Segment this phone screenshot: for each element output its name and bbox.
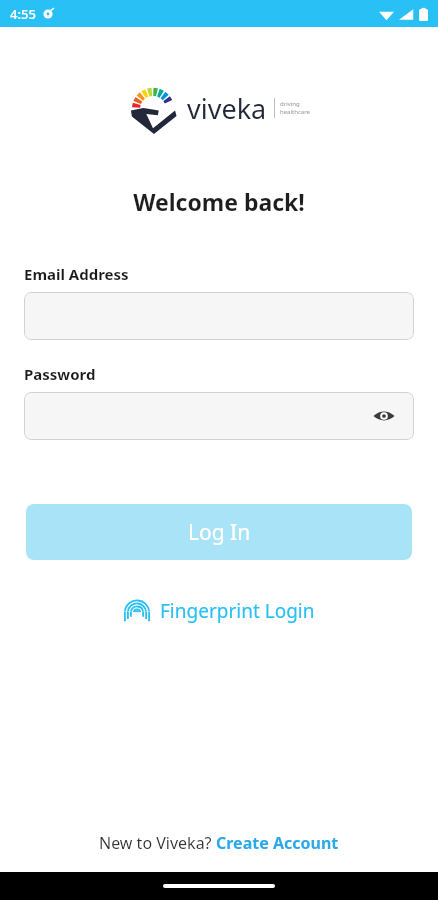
staticText: 4:55 bbox=[10, 5, 36, 23]
staticText: Create Account bbox=[216, 832, 339, 854]
staticText: Password bbox=[24, 364, 96, 384]
button[interactable]: Create Account bbox=[216, 832, 339, 854]
staticText: Email Address bbox=[24, 264, 129, 284]
staticText: Log In bbox=[188, 518, 251, 547]
staticText: Fingerprint Login bbox=[160, 598, 315, 624]
staticText: driving bbox=[280, 100, 300, 108]
staticText: Welcome back! bbox=[133, 186, 305, 217]
button[interactable] bbox=[24, 292, 414, 340]
staticText: viveka bbox=[187, 90, 267, 127]
button[interactable]: Fingerprint Login bbox=[116, 594, 323, 628]
staticText: healthcare bbox=[280, 108, 310, 116]
staticText: New to Viveka? bbox=[99, 832, 216, 854]
button[interactable]: Show password bbox=[24, 392, 414, 440]
button[interactable]: Show password bbox=[370, 402, 398, 430]
button[interactable]: Log In bbox=[26, 504, 412, 560]
